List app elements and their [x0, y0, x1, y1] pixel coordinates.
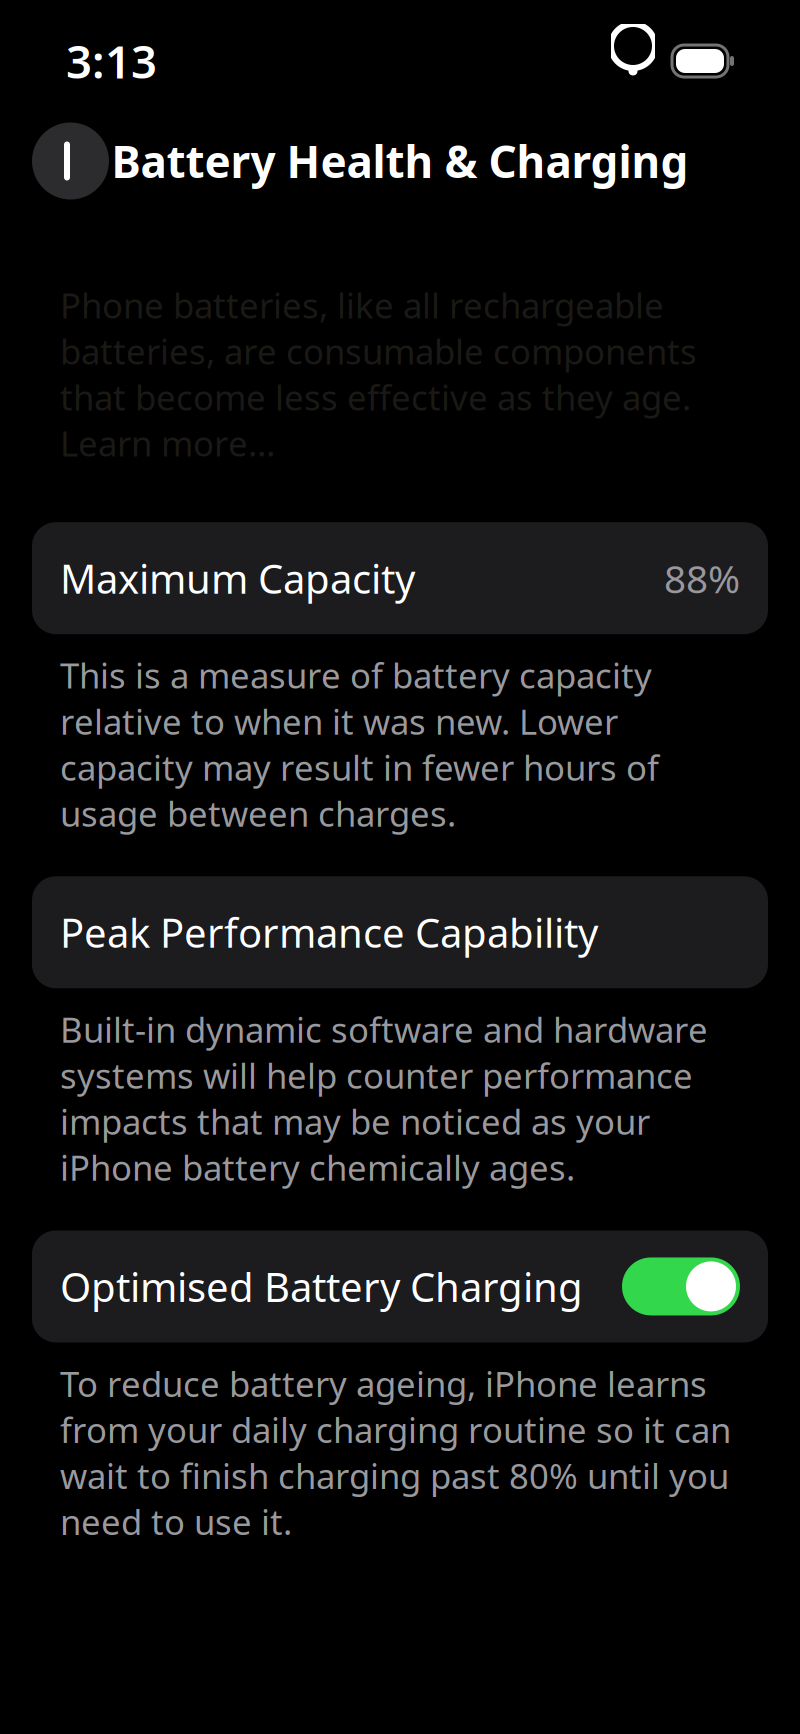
- staticText: Maximum Capacity: [60, 552, 415, 605]
- staticText: Optimised Battery Charging: [60, 1260, 583, 1313]
- staticText: 3:13: [66, 31, 157, 91]
- staticText: 88%: [664, 552, 740, 604]
- staticText: To reduce battery ageing, iPhone learns …: [60, 1360, 731, 1544]
- button[interactable]: Maximum Capacity: [32, 522, 768, 634]
- button[interactable]: Back: [32, 122, 109, 199]
- staticText: Built-in dynamic software and hardware s…: [60, 1006, 708, 1190]
- button[interactable]: Optimised Battery Charging: [32, 1230, 768, 1342]
- staticText: Battery Health & Charging: [111, 132, 688, 190]
- staticText: Phone batteries, like all rechargeable b…: [60, 282, 697, 466]
- staticText: This is a measure of battery capacity re…: [60, 652, 659, 836]
- button[interactable]: Peak Performance Capability: [32, 876, 768, 988]
- staticText: Peak Performance Capability: [60, 906, 598, 959]
